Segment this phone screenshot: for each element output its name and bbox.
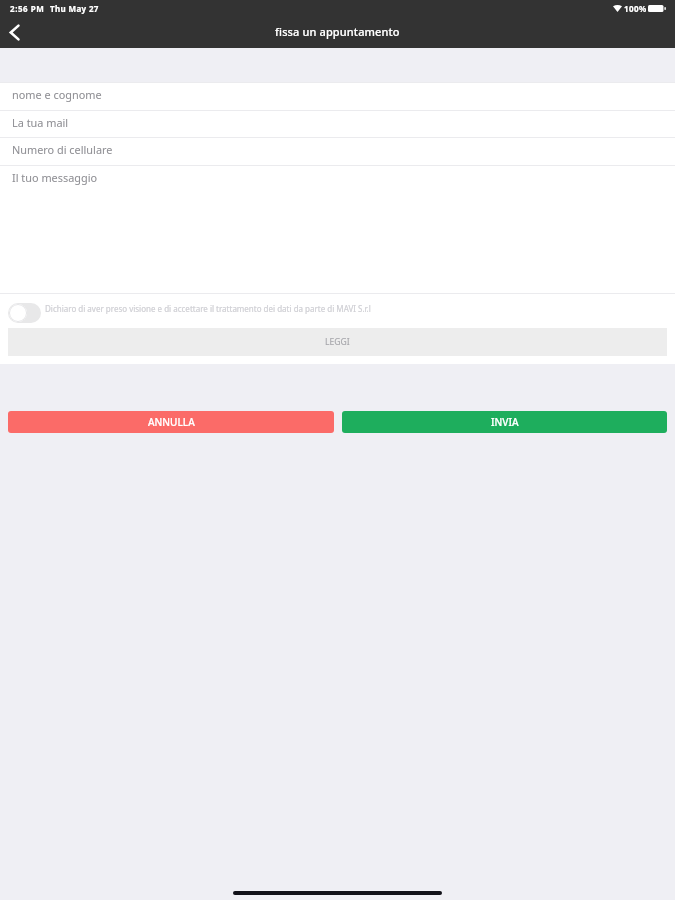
staticText: nome e cognome xyxy=(12,87,102,102)
button[interactable]: Accetta trattamento dati xyxy=(0,294,675,328)
button[interactable]: Il tuo messaggio xyxy=(0,166,675,293)
staticText: 2:56 PM xyxy=(10,3,45,14)
staticText: Dichiaro di aver preso visione e di acce… xyxy=(45,303,371,314)
button[interactable]: nome e cognome xyxy=(0,83,675,110)
staticText: ANNULLA xyxy=(148,415,195,429)
staticText: LEGGI xyxy=(325,336,350,348)
button[interactable]: Back xyxy=(0,16,30,48)
button[interactable]: LEGGI xyxy=(8,328,667,356)
button[interactable]: Numero di cellulare xyxy=(0,138,675,165)
staticText: 100% xyxy=(624,3,647,14)
staticText: Thu May 27 xyxy=(50,3,99,14)
staticText: Il tuo messaggio xyxy=(12,170,98,185)
button[interactable]: Accetta trattamento dati xyxy=(8,303,41,323)
staticText: INVIA xyxy=(491,415,519,429)
button[interactable]: INVIA xyxy=(342,411,667,433)
staticText: Numero di cellulare xyxy=(12,142,113,157)
button[interactable]: La tua mail xyxy=(0,111,675,137)
staticText: La tua mail xyxy=(12,115,69,130)
staticText: fissa un appuntamento xyxy=(275,24,400,39)
button[interactable]: ANNULLA xyxy=(8,411,334,433)
